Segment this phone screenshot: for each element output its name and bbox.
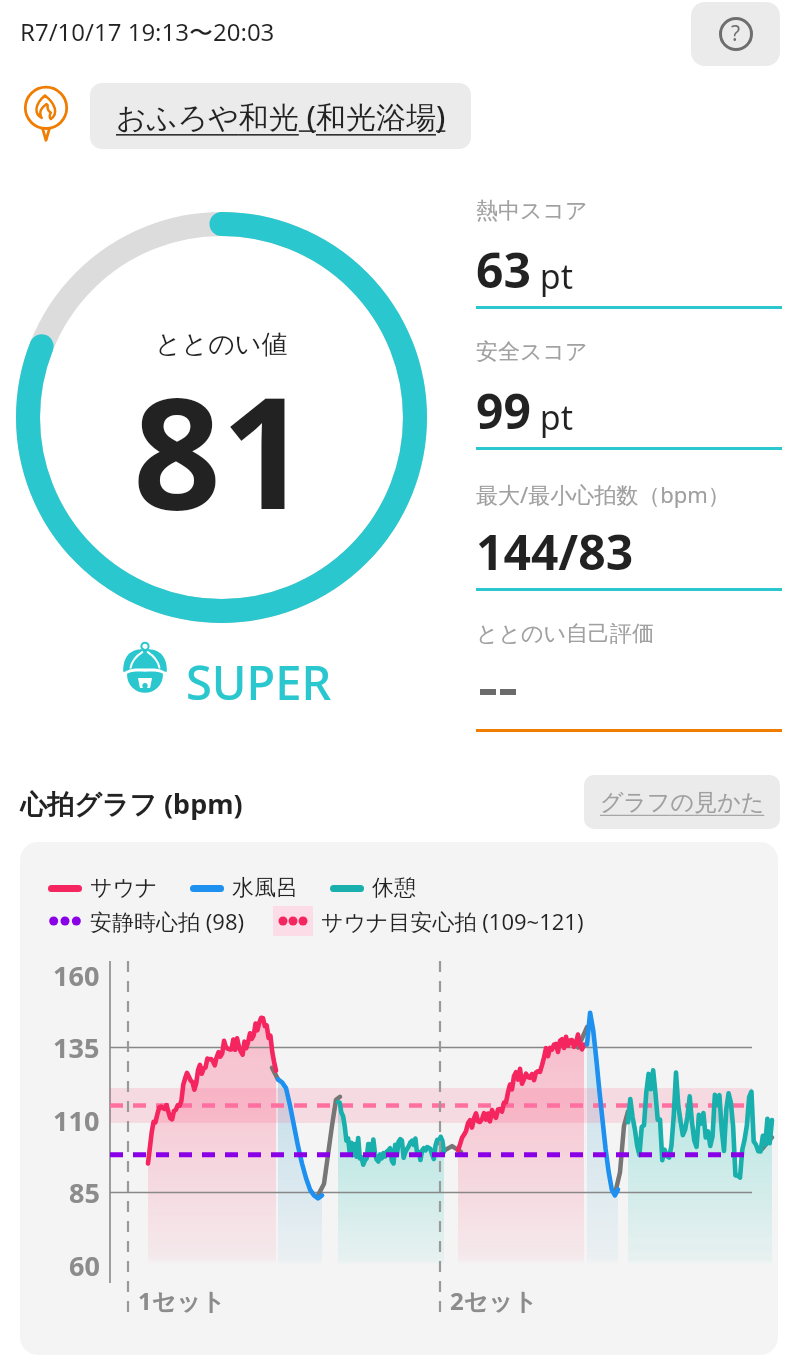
staticText: 144/83 [476,519,634,584]
staticText: pt [531,394,574,440]
staticText: おふろや和光 (和光浴場) [116,96,446,137]
staticText: 99 [476,378,531,443]
staticText: 1セット [138,1284,226,1317]
staticText: 安静時心拍 (98) [90,906,245,936]
staticText: サウナ目安心拍 (109~121) [321,906,584,936]
staticText: pt [531,253,574,299]
staticText: 63 [476,237,531,302]
staticText: 81 [133,344,310,554]
staticText: 休憩 [372,874,416,902]
button[interactable]: グラフの見かた [584,775,780,829]
button[interactable]: おふろや和光 (和光浴場) [90,83,471,149]
staticText: ととのい値 [155,328,288,361]
staticText: 熱中スコア [476,197,588,225]
staticText: ととのい自己評価 [476,620,655,648]
staticText: 160 [53,957,100,994]
staticText: サウナ [90,874,158,902]
staticText: 110 [53,1102,100,1139]
staticText: 135 [53,1029,100,1066]
staticText: 85 [69,1174,100,1211]
staticText: 水風呂 [232,874,298,902]
staticText: 最大/最小心拍数（bpm） [476,479,730,509]
staticText: 2セット [450,1284,538,1317]
staticText: ? [731,19,741,48]
staticText: R7/10/17 19:13〜20:03 [20,15,275,48]
staticText: グラフの見かた [600,788,765,817]
staticText: 60 [69,1247,100,1284]
staticText: SUPER [186,650,332,714]
staticText: 安全スコア [476,338,588,366]
button[interactable]: Help [691,2,780,66]
staticText: 心拍グラフ (bpm) [20,785,243,822]
